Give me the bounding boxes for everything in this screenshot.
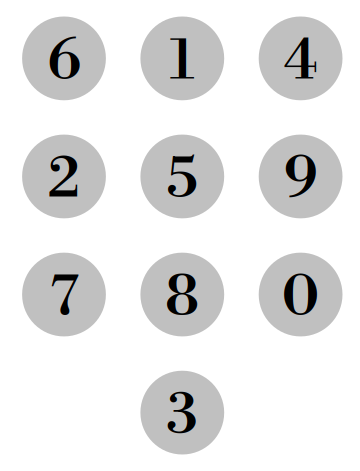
button[interactable]: 2: [22, 135, 106, 218]
staticText: 2: [47, 145, 80, 215]
button[interactable]: 0: [259, 253, 342, 336]
staticText: 8: [165, 263, 200, 333]
button[interactable]: 4: [259, 16, 342, 100]
staticText: 5: [166, 145, 198, 215]
button[interactable]: 9: [259, 135, 342, 218]
button[interactable]: 5: [140, 135, 224, 218]
staticText: 1: [170, 27, 195, 97]
staticText: 6: [47, 27, 81, 97]
staticText: 4: [284, 27, 318, 97]
button[interactable]: 6: [22, 16, 106, 100]
staticText: 7: [49, 263, 78, 333]
staticText: 0: [282, 263, 320, 333]
button[interactable]: 8: [140, 253, 224, 336]
button[interactable]: 1: [140, 16, 224, 100]
staticText: 9: [284, 145, 318, 215]
button[interactable]: 3: [140, 371, 224, 454]
staticText: 3: [166, 381, 198, 451]
button[interactable]: 7: [22, 253, 106, 336]
